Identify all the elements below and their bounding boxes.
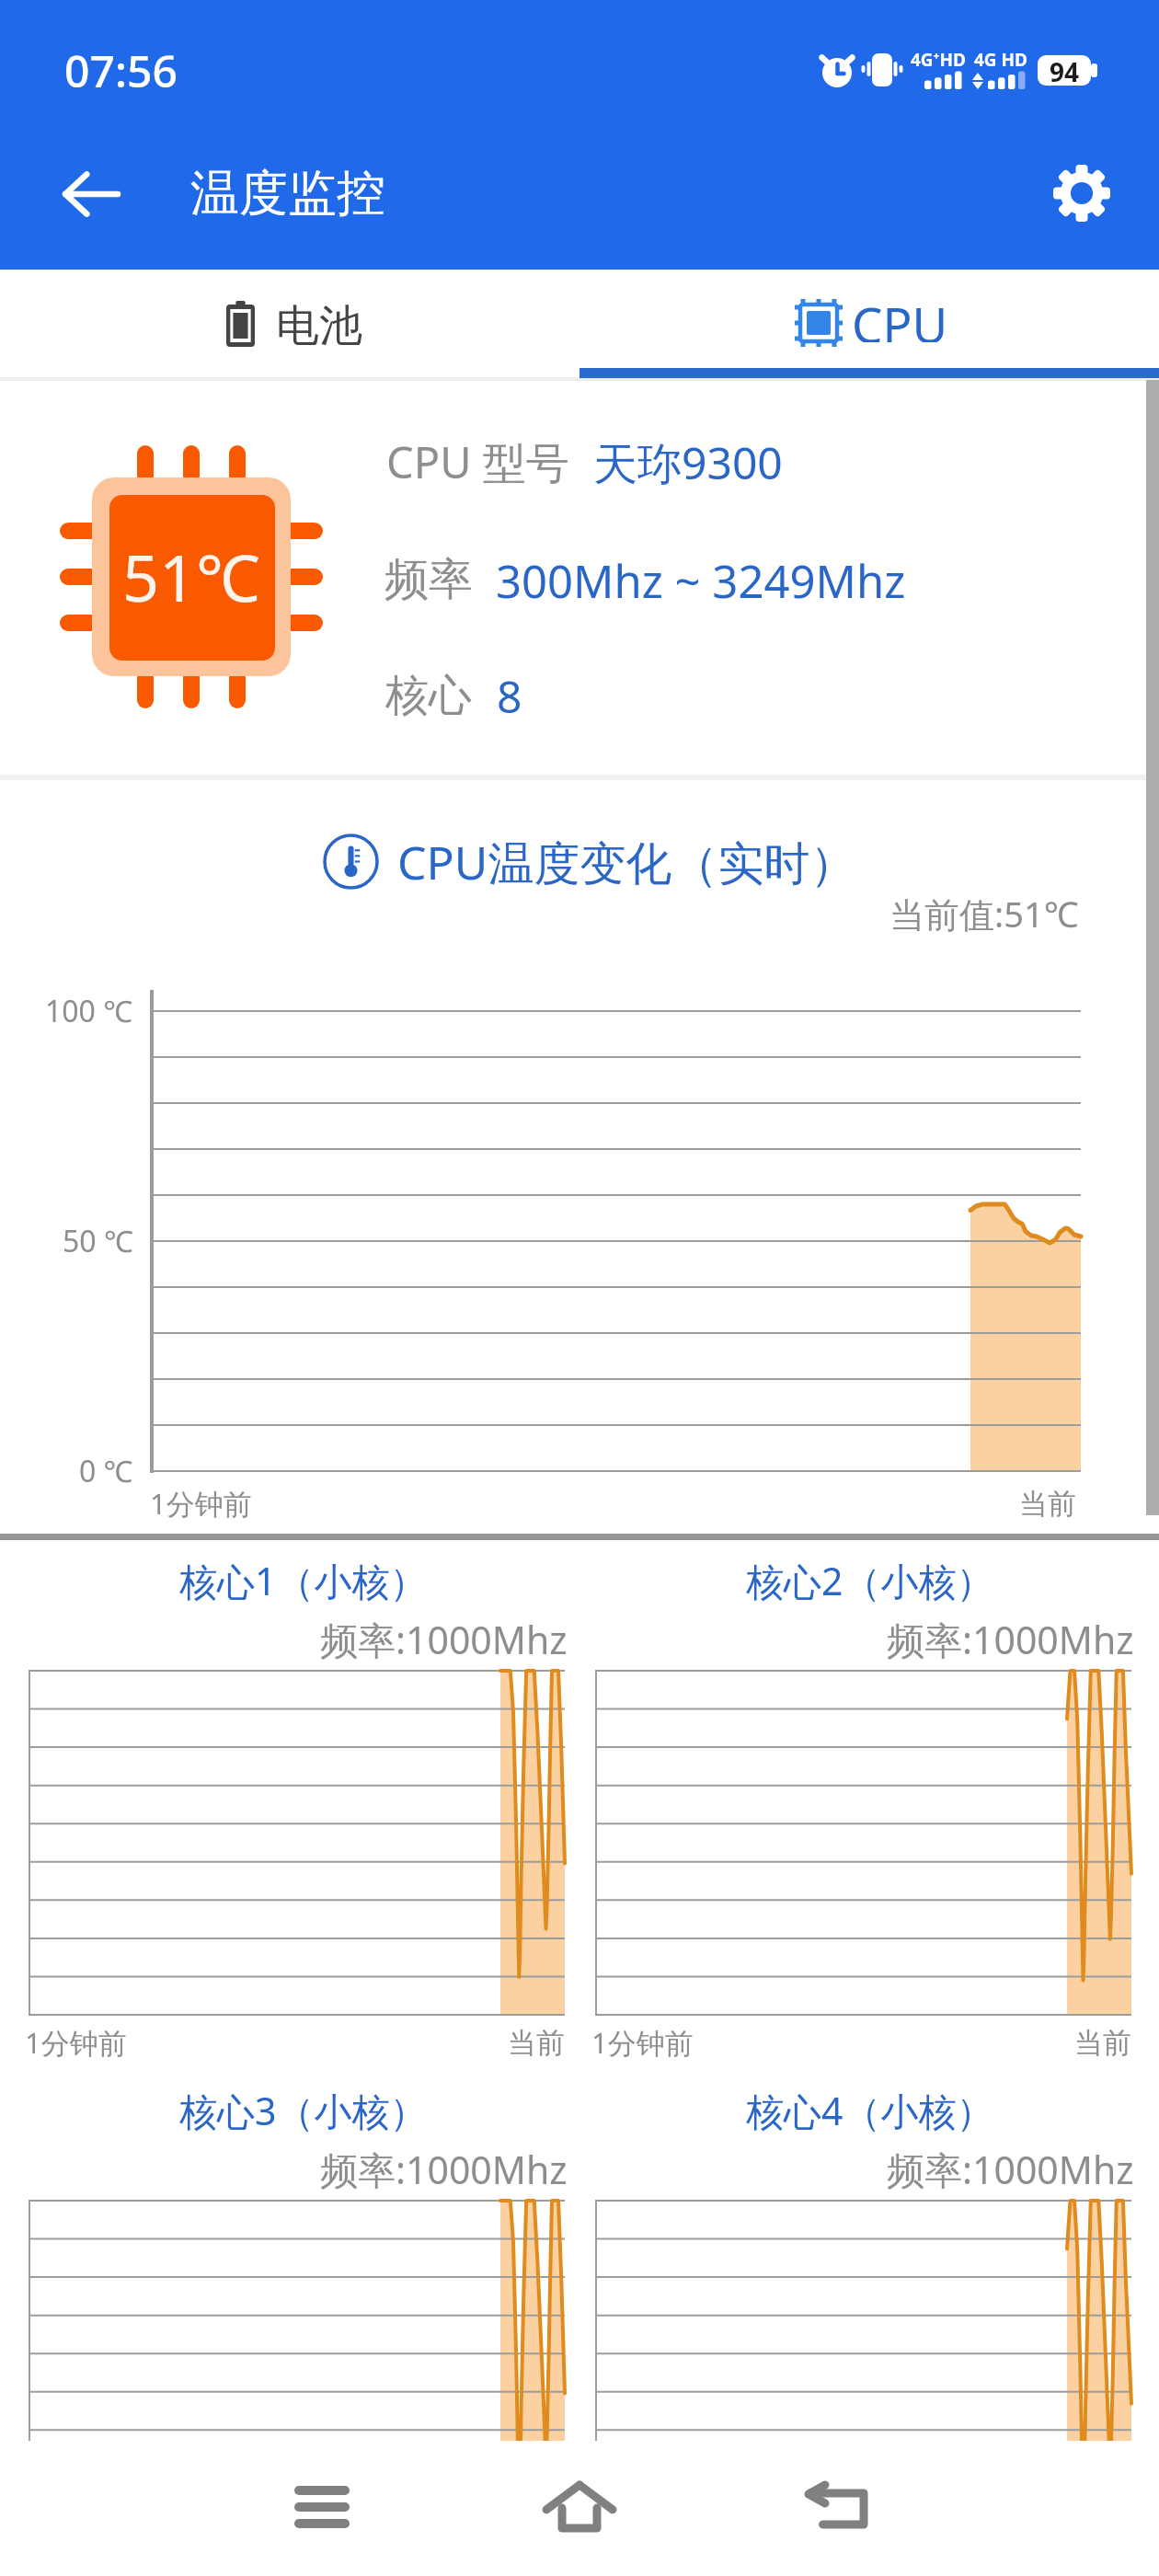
staticText: 07:56 [64, 40, 178, 100]
staticText: CPU 型号 [386, 432, 569, 491]
button[interactable]: Menu [267, 2447, 377, 2567]
staticText: 电池 [276, 299, 362, 349]
staticText: 51℃ [122, 533, 260, 620]
staticText: 4G HD [974, 48, 1028, 72]
staticText: 天珎9300 [593, 432, 783, 491]
button[interactable]: Back [782, 2447, 892, 2567]
staticText: 当前 [508, 2025, 565, 2061]
button[interactable]: Back [63, 166, 120, 223]
staticText: 核心2（小核） [746, 1555, 994, 1606]
staticText: 核心1（小核） [179, 1555, 428, 1606]
staticText: 1分钟前 [150, 1484, 252, 1523]
staticText: 0 ℃ [79, 1451, 133, 1491]
staticText: 当前 [1074, 2025, 1131, 2061]
staticText: 频率 [384, 552, 473, 607]
staticText: 当前 [1019, 1486, 1076, 1522]
staticText: 300Mhz ~ 3249Mhz [496, 550, 906, 609]
staticText: CPU [852, 291, 948, 342]
staticText: 1分钟前 [591, 2023, 694, 2062]
button[interactable]: CPU [579, 270, 1159, 381]
staticText: CPU温度变化（实时） [397, 831, 856, 890]
staticText: 当前值:51℃ [889, 890, 1079, 937]
staticText: 4G⁺HD [911, 48, 966, 72]
staticText: 1分钟前 [25, 2023, 127, 2062]
staticText: 温度监控 [190, 163, 385, 224]
staticText: 频率:1000Mhz [887, 2144, 1134, 2195]
staticText: 94 [1050, 54, 1080, 86]
staticText: 核心 [385, 669, 472, 723]
button[interactable]: Settings [1050, 162, 1113, 224]
staticText: 频率:1000Mhz [320, 1614, 568, 1665]
button[interactable]: Home [524, 2447, 635, 2567]
staticText: 核心3（小核） [179, 2085, 428, 2136]
staticText: 8 [497, 666, 522, 725]
staticText: 频率:1000Mhz [320, 2144, 568, 2195]
button[interactable]: 电池 [0, 270, 579, 381]
staticText: 100 ℃ [45, 991, 133, 1031]
staticText: 核心4（小核） [746, 2085, 994, 2136]
staticText: 50 ℃ [63, 1221, 133, 1261]
staticText: 频率:1000Mhz [887, 1614, 1134, 1665]
